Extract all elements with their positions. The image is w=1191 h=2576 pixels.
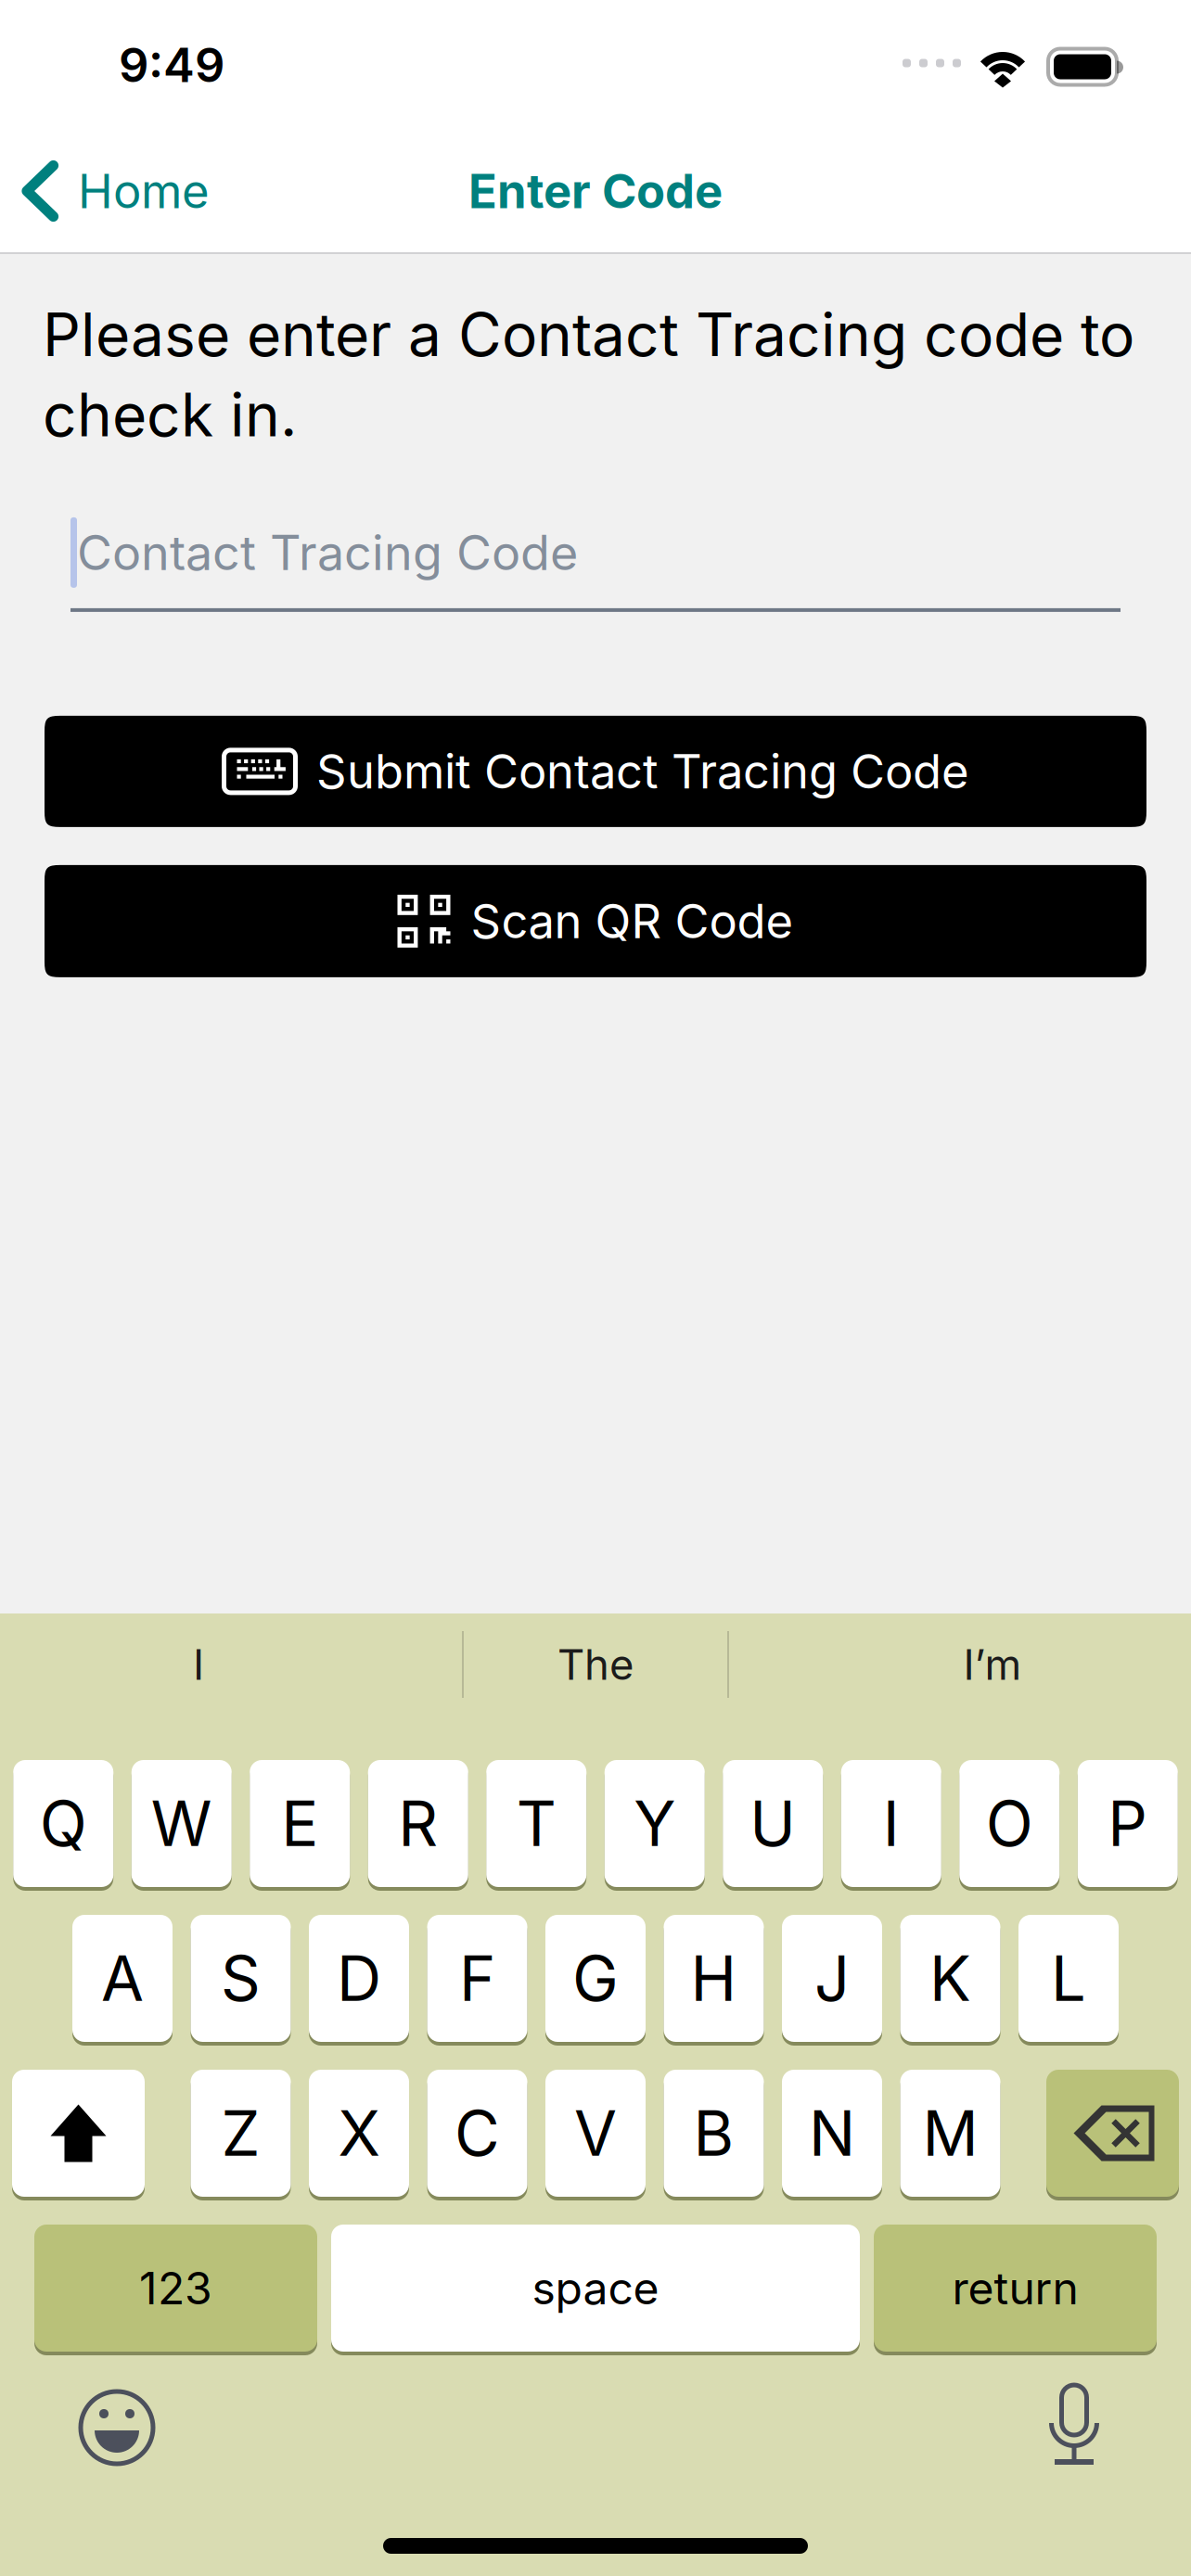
button[interactable]: Scan QR Code: [45, 865, 1146, 977]
button[interactable]: C: [427, 2070, 527, 2197]
button[interactable]: W: [132, 1760, 232, 1887]
staticText: E: [281, 1786, 318, 1861]
staticText: U: [750, 1786, 796, 1861]
staticText: K: [929, 1941, 971, 2016]
button[interactable]: G: [545, 1915, 646, 2042]
button[interactable]: P: [1078, 1760, 1178, 1887]
button[interactable]: J: [782, 1915, 882, 2042]
button[interactable]: T: [486, 1760, 586, 1887]
staticText: P: [1108, 1786, 1148, 1861]
staticText: I: [883, 1786, 900, 1861]
button[interactable]: Dictation: [1048, 2385, 1100, 2470]
button[interactable]: X: [309, 2070, 409, 2197]
button[interactable]: I’m: [794, 1613, 1191, 1715]
staticText: D: [337, 1941, 381, 2016]
staticText: C: [455, 2096, 500, 2171]
staticText: V: [574, 2096, 617, 2171]
staticText: Scan QR Code: [471, 893, 794, 950]
staticText: Please enter a Contact Tracing code to c…: [43, 299, 1134, 451]
staticText: L: [1051, 1941, 1086, 2016]
button[interactable]: Emoji: [80, 2391, 154, 2465]
staticText: Z: [221, 2096, 260, 2171]
staticText: 123: [139, 2261, 212, 2315]
staticText: F: [459, 1941, 495, 2016]
staticText: Submit Contact Tracing Code: [316, 743, 969, 800]
staticText: Y: [634, 1786, 675, 1861]
button[interactable]: V: [545, 2070, 646, 2197]
button[interactable]: Submit Contact Tracing Code: [45, 716, 1146, 827]
button[interactable]: D: [309, 1915, 409, 2042]
staticText: W: [151, 1786, 212, 1861]
staticText: S: [221, 1941, 261, 2016]
button[interactable]: Delete: [1046, 2070, 1179, 2197]
staticText: return: [952, 2261, 1078, 2315]
staticText: X: [338, 2096, 380, 2171]
staticText: The: [557, 1639, 634, 1690]
button[interactable]: L: [1018, 1915, 1119, 2042]
button[interactable]: R: [368, 1760, 468, 1887]
button[interactable]: B: [664, 2070, 764, 2197]
staticText: Enter Code: [468, 163, 723, 219]
button[interactable]: M: [900, 2070, 1000, 2197]
button[interactable]: F: [427, 1915, 527, 2042]
button[interactable]: Z: [191, 2070, 291, 2197]
button[interactable]: N: [782, 2070, 882, 2197]
staticText: Contact Tracing Code: [77, 523, 578, 582]
staticText: J: [814, 1941, 850, 2016]
button[interactable]: return: [874, 2225, 1157, 2352]
staticText: B: [693, 2096, 734, 2171]
button[interactable]: E: [250, 1760, 350, 1887]
button[interactable]: H: [664, 1915, 764, 2042]
button[interactable]: S: [191, 1915, 291, 2042]
button[interactable]: I: [841, 1760, 941, 1887]
staticText: N: [809, 2096, 855, 2171]
staticText: H: [691, 1941, 737, 2016]
staticText: Home: [78, 163, 210, 219]
button[interactable]: Y: [605, 1760, 705, 1887]
staticText: R: [398, 1786, 438, 1861]
staticText: Q: [40, 1786, 87, 1861]
button[interactable]: Home: [0, 145, 232, 237]
staticText: G: [572, 1941, 619, 2016]
button[interactable]: K: [900, 1915, 1000, 2042]
staticText: 9:49: [119, 36, 224, 93]
button[interactable]: Shift: [12, 2070, 145, 2197]
button[interactable]: The: [397, 1613, 794, 1715]
staticText: O: [986, 1786, 1033, 1861]
button[interactable]: U: [723, 1760, 823, 1887]
staticText: I’m: [963, 1639, 1022, 1690]
button[interactable]: Q: [13, 1760, 113, 1887]
button[interactable]: I: [0, 1613, 397, 1715]
staticText: T: [516, 1786, 556, 1861]
button[interactable]: space: [331, 2225, 860, 2352]
staticText: A: [101, 1941, 144, 2016]
staticText: I: [193, 1639, 204, 1690]
button[interactable]: 123: [34, 2225, 317, 2352]
button[interactable]: O: [959, 1760, 1059, 1887]
staticText: space: [532, 2261, 659, 2315]
staticText: M: [922, 2096, 978, 2171]
button[interactable]: A: [72, 1915, 173, 2042]
